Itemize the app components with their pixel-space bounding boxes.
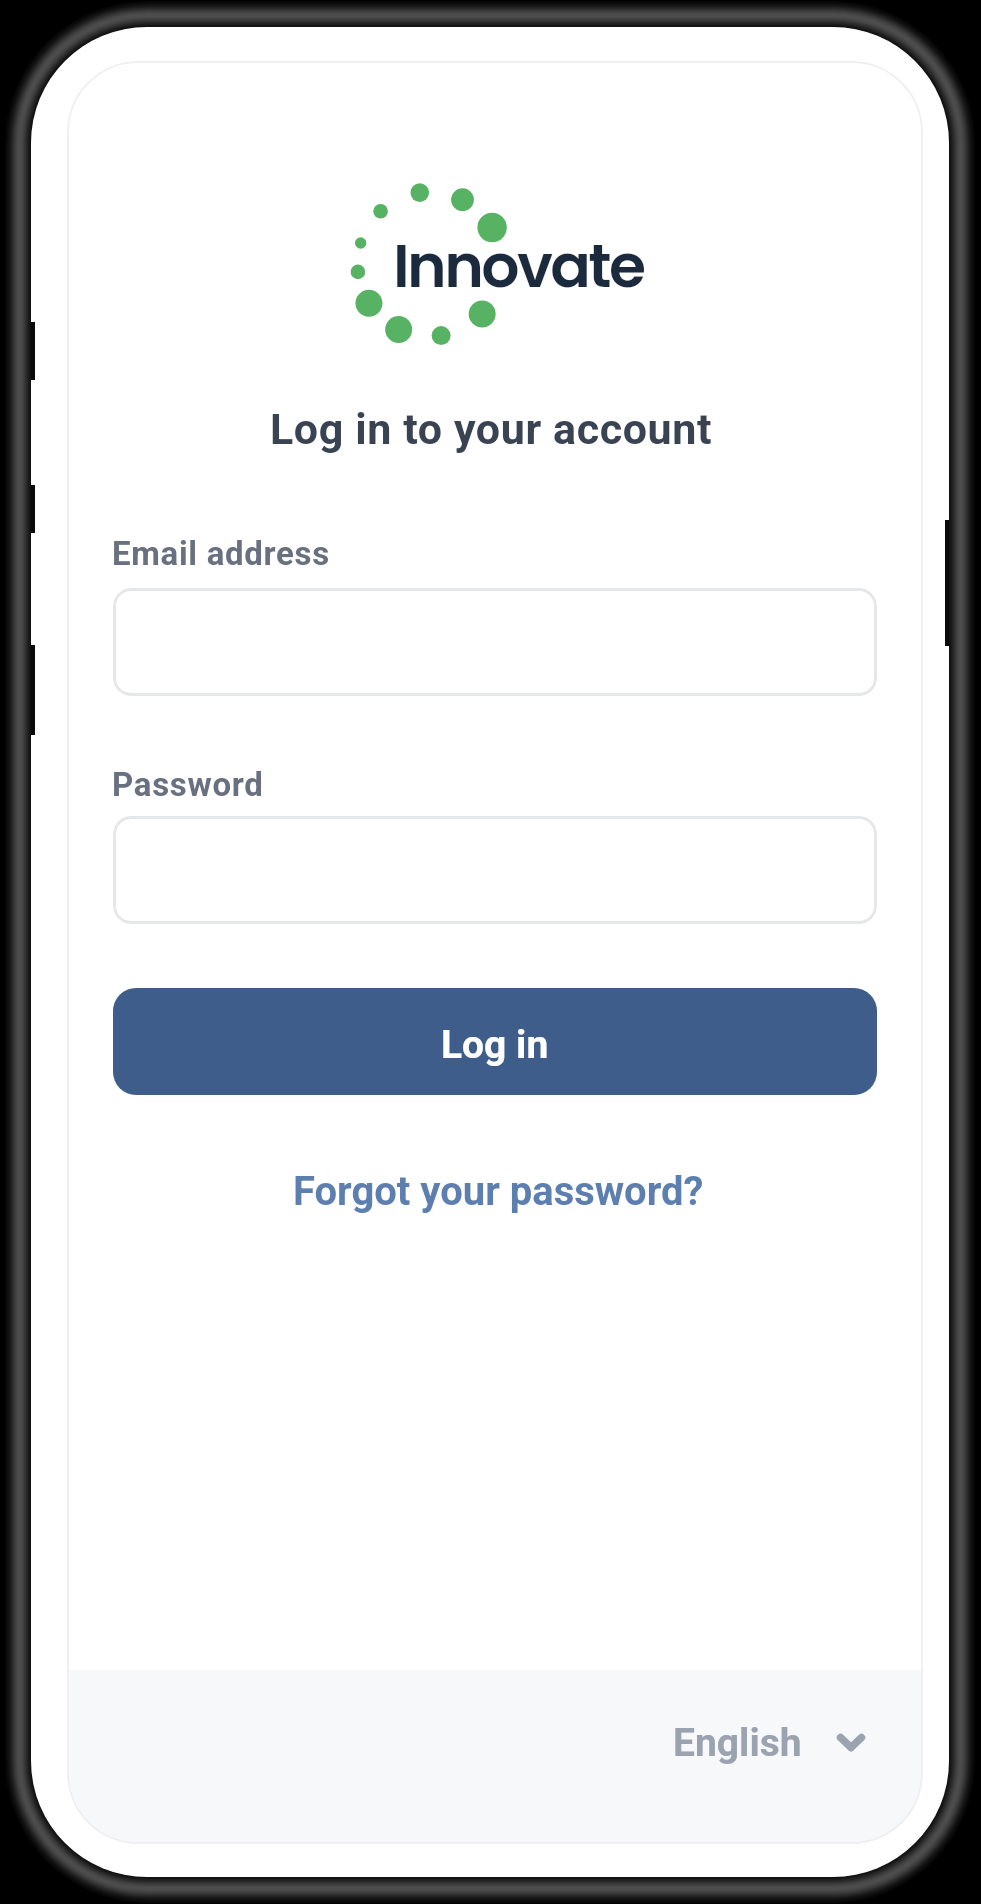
staticText: Forgot your password?	[293, 1168, 704, 1215]
other: Change language	[837, 1734, 865, 1751]
staticText: Password	[112, 765, 264, 804]
button[interactable]	[113, 816, 877, 924]
button[interactable]: Log in	[113, 988, 877, 1095]
staticText: Innovate	[393, 224, 644, 308]
button[interactable]: Forgot your password?	[273, 1152, 724, 1231]
staticText: Log in	[441, 1022, 549, 1068]
staticText: English	[673, 1720, 802, 1766]
staticText: Log in to your account	[270, 404, 713, 454]
button[interactable]	[113, 588, 877, 696]
button[interactable]: English	[657, 1698, 881, 1788]
staticText: Email address	[112, 534, 330, 573]
